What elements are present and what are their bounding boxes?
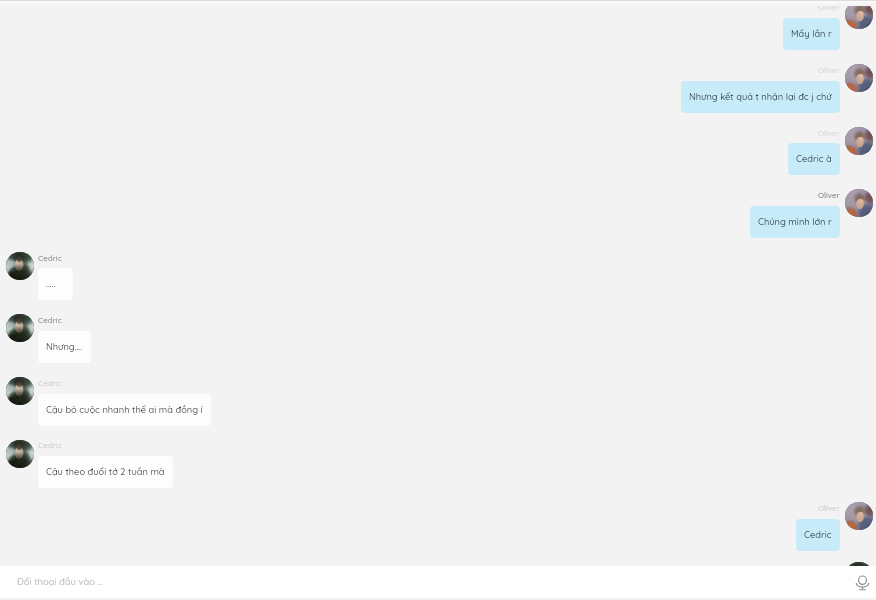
staticText: Nhưng.... (46, 341, 83, 353)
button[interactable]: Đối thoại đầu vào ... (0, 566, 876, 600)
button[interactable]: ..... (38, 268, 73, 300)
staticText: Mấy lần r (791, 28, 832, 40)
button[interactable]: Nhưng.... (38, 331, 91, 363)
staticText: Cedric (38, 440, 62, 450)
staticText: ..... (46, 278, 56, 290)
button[interactable]: Oliver profile picture (845, 1, 873, 29)
button[interactable]: Cedric profile picture (6, 252, 34, 280)
staticText: Oliver (818, 2, 840, 12)
staticText: Cedric (38, 378, 62, 388)
staticText: Oliver (818, 503, 840, 513)
staticText: Cậu theo đuổi tớ 2 tuần mà (46, 466, 165, 478)
button[interactable]: Cedric profile picture (845, 562, 873, 590)
button[interactable]: Cedric (796, 519, 840, 551)
button[interactable]: Oliver profile picture (845, 189, 873, 217)
button[interactable]: Oliver profile picture (845, 64, 873, 92)
staticText: Đối thoại đầu vào ... (17, 576, 104, 588)
staticText: Cedric (38, 253, 62, 263)
staticText: Cậu bỏ cuộc nhanh thế ai mà đồng í (46, 404, 203, 416)
staticText: Cedric à (796, 153, 832, 165)
button[interactable]: Oliver profile picture (845, 127, 873, 155)
staticText: Oliver (818, 65, 840, 75)
button[interactable]: Cedric profile picture (6, 377, 34, 405)
button[interactable]: Cedric profile picture (6, 440, 34, 468)
button[interactable]: Mấy lần r (783, 18, 840, 50)
staticText: Nhưng kết quả t nhận lại đc j chứ (689, 91, 832, 103)
button[interactable]: Cedric profile picture (6, 314, 34, 342)
staticText: Cedric (38, 315, 62, 325)
staticText: Cedric (804, 529, 832, 541)
staticText: Oliver (818, 128, 840, 138)
button[interactable]: Nhưng kết quả t nhận lại đc j chứ (681, 81, 840, 113)
staticText: Oliver (818, 190, 840, 200)
button[interactable]: Cedric à (788, 143, 840, 175)
button[interactable]: Cậu theo đuổi tớ 2 tuần mà (38, 456, 173, 488)
button[interactable]: Cậu bỏ cuộc nhanh thế ai mà đồng í (38, 394, 211, 426)
button[interactable]: Voice input (851, 571, 873, 593)
button[interactable]: Chúng mình lớn r (750, 206, 840, 238)
staticText: Chúng mình lớn r (758, 216, 832, 228)
button[interactable]: Oliver profile picture (845, 502, 873, 530)
